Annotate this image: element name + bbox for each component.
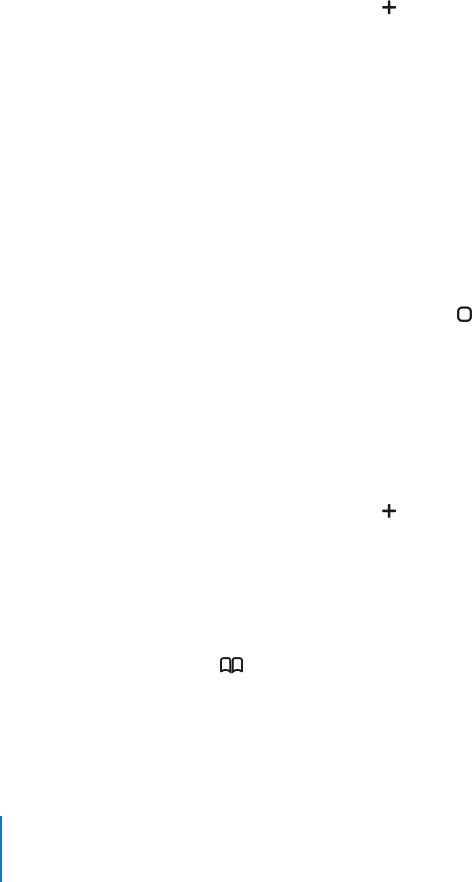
- button[interactable]: Add: [367, 489, 411, 533]
- button[interactable]: Select: [449, 299, 473, 329]
- button[interactable]: New: [367, 0, 411, 14]
